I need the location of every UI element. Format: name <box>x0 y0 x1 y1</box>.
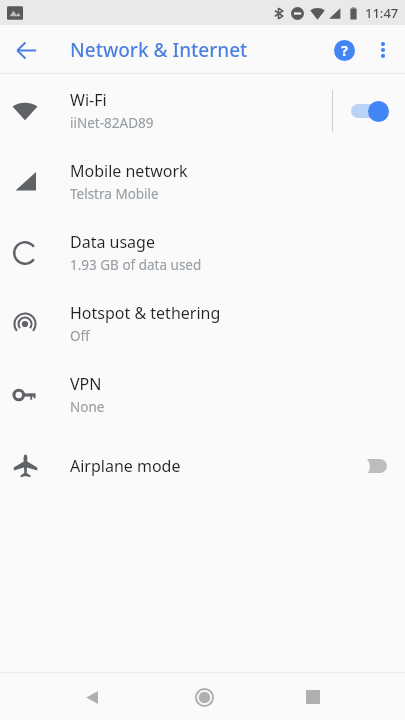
staticText: Telstra Mobile <box>70 185 159 203</box>
staticText: Mobile network <box>70 160 188 182</box>
staticText: None <box>70 398 105 416</box>
staticText: Wi-Fi <box>70 89 107 111</box>
button[interactable]: Help <box>323 29 365 71</box>
staticText: iiNet-82AD89 <box>70 114 154 132</box>
staticText: 11:47 <box>365 4 399 22</box>
button[interactable]: Back <box>4 28 48 72</box>
button[interactable]: Recent apps <box>291 675 335 719</box>
staticText: Network & Internet <box>70 37 248 63</box>
button[interactable]: More options <box>362 29 404 71</box>
button[interactable]: Airplane mode toggle <box>333 440 405 492</box>
staticText: ? <box>341 41 348 60</box>
button[interactable]: Wi-Fi toggle <box>333 85 405 137</box>
staticText: Airplane mode <box>70 455 181 477</box>
button[interactable]: Airplane mode <box>0 430 405 501</box>
button[interactable]: Wi-Fi <box>0 75 405 146</box>
staticText: Off <box>70 327 90 345</box>
button[interactable]: Hotspot & tethering <box>0 288 405 359</box>
button[interactable]: VPN <box>0 359 405 430</box>
staticText: Data usage <box>70 231 155 253</box>
staticText: 1.93 GB of data used <box>70 256 202 274</box>
staticText: Hotspot & tethering <box>70 302 221 324</box>
button[interactable]: Home <box>182 675 226 719</box>
staticText: VPN <box>70 373 102 395</box>
button[interactable]: Back <box>70 675 114 719</box>
button[interactable]: Data usage <box>0 217 405 288</box>
button[interactable]: Mobile network <box>0 146 405 217</box>
